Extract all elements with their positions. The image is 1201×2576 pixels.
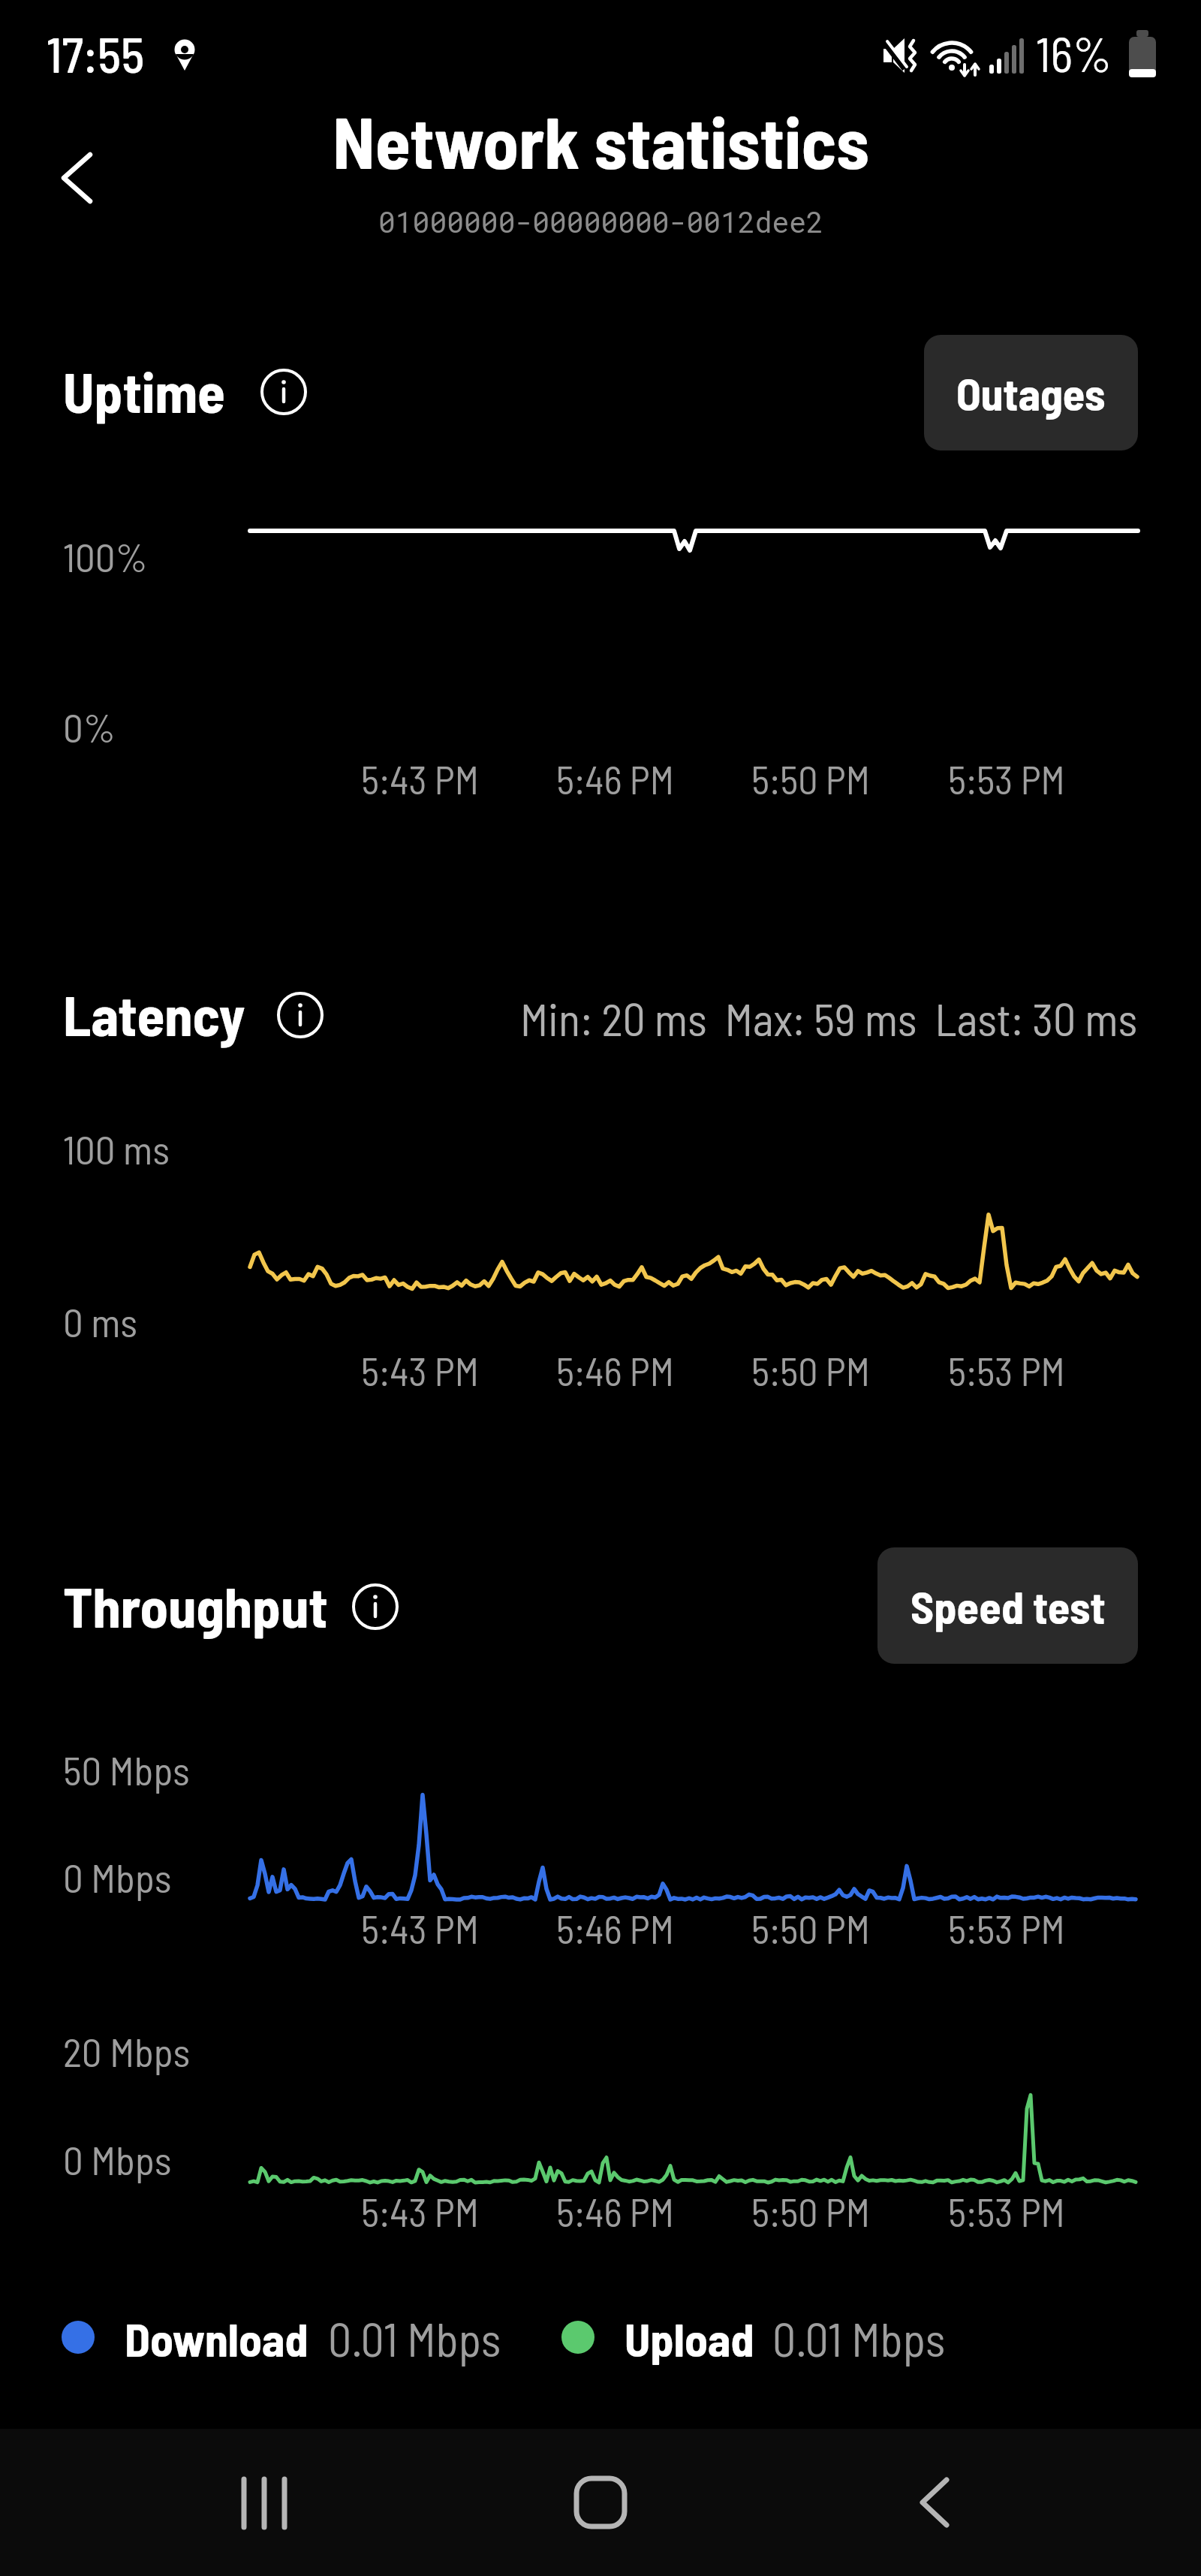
- button[interactable]: [351, 1583, 399, 1631]
- staticText: 01000000-00000000-0012dee2: [378, 203, 823, 240]
- staticText: Latency: [63, 980, 245, 1047]
- staticText: 5:46 PM: [556, 1905, 674, 1951]
- button[interactable]: [903, 2478, 971, 2530]
- staticText: 5:43 PM: [361, 755, 479, 802]
- staticText: 5:53 PM: [948, 1347, 1065, 1393]
- staticText: 5:50 PM: [751, 755, 870, 802]
- staticText: 5:46 PM: [556, 1347, 674, 1393]
- staticText: Outages: [956, 366, 1106, 420]
- staticText: Speed test: [911, 1579, 1106, 1633]
- staticText: 5:43 PM: [361, 1905, 479, 1951]
- button[interactable]: [260, 368, 308, 416]
- button[interactable]: [567, 2478, 634, 2530]
- staticText: 5:43 PM: [361, 1347, 479, 1393]
- staticText: 0.01 Mbps: [328, 2310, 501, 2366]
- staticText: 5:53 PM: [948, 1905, 1065, 1951]
- staticText: 0 ms: [63, 1297, 138, 1345]
- staticText: Download: [125, 2310, 309, 2366]
- staticText: Throughput: [63, 1571, 328, 1639]
- staticText: 5:46 PM: [556, 2188, 674, 2234]
- staticText: Uptime: [63, 357, 226, 424]
- staticText: 5:53 PM: [948, 2188, 1065, 2234]
- button[interactable]: Outages: [924, 335, 1138, 450]
- staticText: Network statistics: [333, 97, 869, 183]
- staticText: 16%: [1036, 24, 1112, 82]
- staticText: 5:50 PM: [751, 1905, 870, 1951]
- staticText: 20 Mbps: [63, 2027, 191, 2075]
- staticText: 17:55: [47, 23, 145, 83]
- staticText: 50 Mbps: [63, 1746, 190, 1794]
- button[interactable]: Speed test: [877, 1547, 1138, 1664]
- staticText: 0.01 Mbps: [772, 2310, 946, 2366]
- staticText: 5:46 PM: [556, 755, 674, 802]
- staticText: 0 Mbps: [63, 1853, 172, 1901]
- staticText: 5:50 PM: [751, 2188, 870, 2234]
- staticText: 100 ms: [63, 1125, 170, 1173]
- staticText: 0 Mbps: [63, 2135, 172, 2183]
- staticText: 5:50 PM: [751, 1347, 870, 1393]
- staticText: 0%: [63, 703, 116, 751]
- staticText: Min: 20 ms Max: 59 ms Last: 30 ms: [520, 991, 1138, 1045]
- staticText: Upload: [625, 2310, 754, 2366]
- button[interactable]: [276, 991, 324, 1039]
- button[interactable]: [53, 150, 105, 206]
- button[interactable]: [230, 2478, 298, 2530]
- staticText: 5:43 PM: [361, 2188, 479, 2234]
- staticText: 100%: [63, 532, 148, 580]
- staticText: 5:53 PM: [948, 755, 1065, 802]
